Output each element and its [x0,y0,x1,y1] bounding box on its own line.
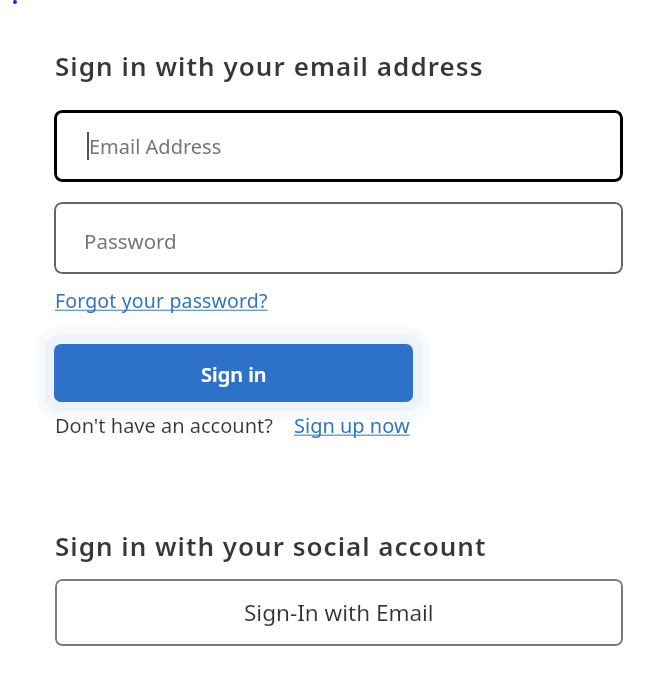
button[interactable]: Sign up now [294,412,410,439]
staticText: Password [84,227,177,255]
button[interactable]: Sign in [54,344,413,402]
button[interactable]: Sign-In with Email [55,579,623,646]
staticText: Email Address [89,133,222,160]
staticText: Sign-In with Email [244,597,434,628]
button[interactable]: Forgot your password? [55,287,268,314]
staticText: Don't have an account? [55,412,273,439]
staticText: Sign in with your email address [55,48,484,83]
button[interactable]: Email Address [54,110,623,182]
staticText: Sign in [201,361,267,388]
staticText: Sign in with your social account [55,528,487,563]
button[interactable]: Password [54,202,623,274]
